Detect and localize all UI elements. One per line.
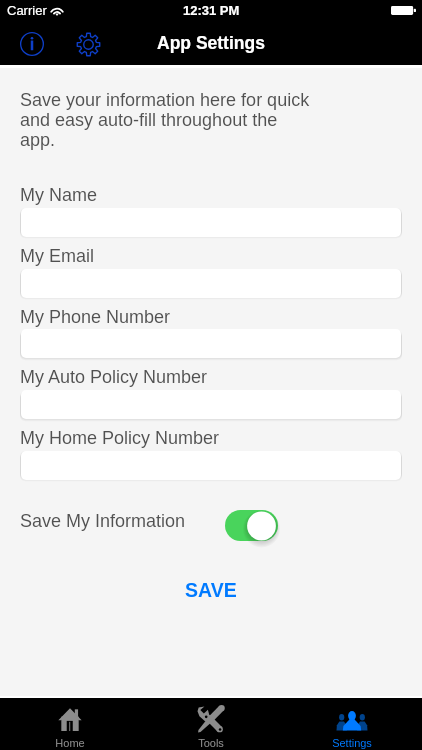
button[interactable]: Information [6,23,58,65]
button[interactable]: Save My Information toggle [225,510,278,541]
staticText: My Name [20,185,98,205]
button[interactable]: SAVE [166,575,256,605]
staticText: Save My Information [20,511,186,531]
staticText: Carrier [7,3,47,18]
staticText: Save your information here for quick and… [20,90,312,150]
staticText: Home [55,737,85,749]
staticText: My Auto Policy Number [20,367,208,387]
staticText: My Phone Number [20,307,171,327]
staticText: Settings [332,737,372,749]
staticText: 12:31 PM [183,3,240,18]
button[interactable]: Settings [281,698,422,750]
staticText: Tools [198,737,224,749]
staticText: My Email [20,246,95,266]
button[interactable]: Tools [140,698,281,750]
staticText: SAVE [185,579,237,601]
button[interactable]: Home [0,698,140,750]
button[interactable]: Settings [62,23,114,65]
staticText: My Home Policy Number [20,428,220,448]
staticText: App Settings [157,33,265,53]
